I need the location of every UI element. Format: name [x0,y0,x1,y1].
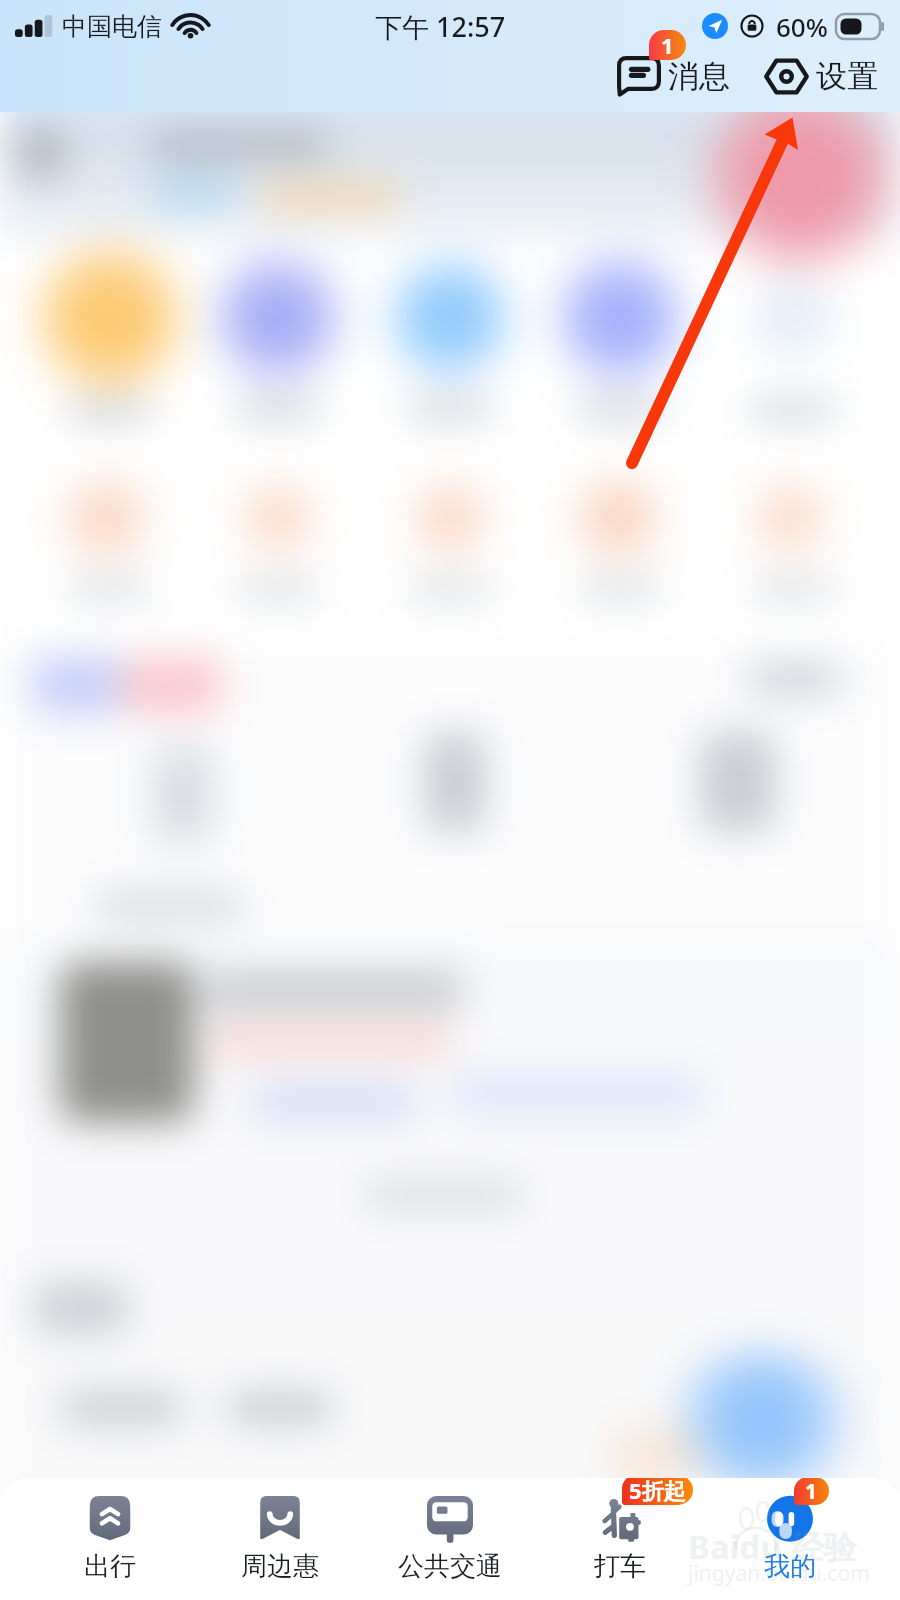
staticText: jingyan.baidu.com [688,1559,870,1588]
button[interactable]: 1 [705,1478,875,1600]
button[interactable]: 出行 [25,1478,195,1600]
staticText: 1 [661,30,674,60]
button[interactable]: 设置 [761,53,881,100]
staticText: Baidu 经验 [688,1524,857,1569]
staticText: 中国电信 [62,11,162,42]
staticText: 打车 [594,1550,646,1583]
staticText: 5折起 [629,1478,686,1505]
button[interactable]: 1 [614,53,733,100]
staticText: 周边惠 [241,1550,319,1583]
staticText: 出行 [84,1550,136,1583]
button[interactable]: 周边惠 [195,1478,365,1600]
staticText: 公共交通 [398,1550,502,1583]
staticText: 下午 12:57 [375,8,506,45]
staticText: 60% [776,9,828,44]
button[interactable]: 公共交通 [365,1478,535,1600]
staticText: 我的 [764,1550,816,1583]
staticText: 1 [805,1478,818,1505]
staticText: 设置 [816,57,878,96]
staticText: 消息 [668,57,730,96]
button[interactable]: 5折起 [535,1478,705,1600]
